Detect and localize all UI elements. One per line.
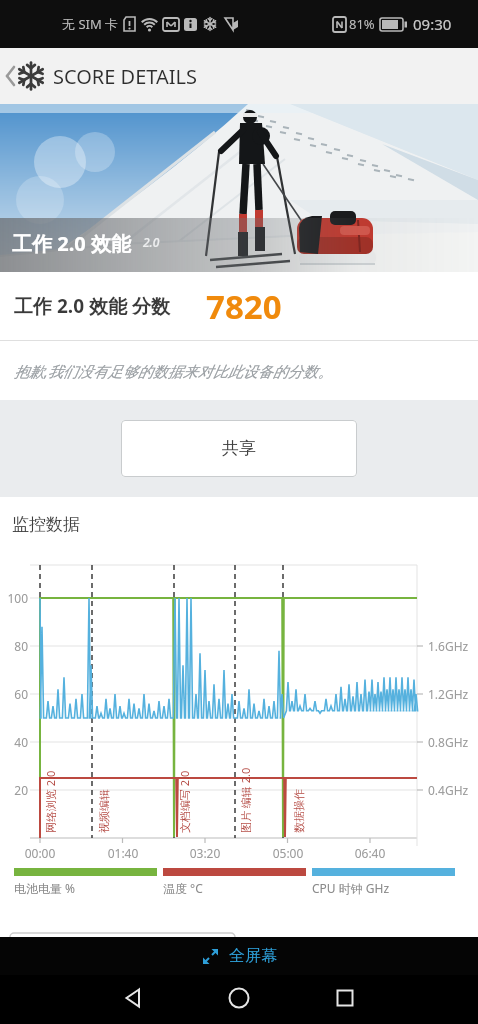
staticText: 80 — [2, 638, 28, 654]
staticText: 20 — [2, 782, 28, 798]
staticText: 共享 — [222, 438, 256, 459]
button[interactable] — [186, 975, 292, 1024]
staticText: 7820 — [206, 284, 282, 329]
staticText: 温度 °C — [163, 880, 203, 896]
staticText: 2.0 — [143, 234, 160, 250]
staticText: 工作 2.0 效能 — [12, 230, 131, 257]
staticText: 05:00 — [266, 845, 310, 861]
staticText: 09:30 — [413, 14, 452, 34]
staticText: 0.4GHz — [428, 782, 469, 798]
button[interactable]: SCORE DETAILS — [0, 48, 478, 104]
staticText: 00:00 — [18, 845, 62, 861]
staticText: 全屏幕 — [229, 946, 277, 966]
staticText: SCORE DETAILS — [53, 63, 198, 90]
staticText: 01:40 — [101, 845, 145, 861]
staticText: 1.6GHz — [428, 638, 469, 654]
staticText: 100 — [2, 590, 28, 606]
button[interactable]: 共享 — [121, 420, 357, 477]
staticText: 电池电量 % — [14, 880, 76, 896]
button[interactable] — [292, 975, 398, 1024]
button[interactable] — [80, 975, 186, 1024]
staticText: 工作 2.0 效能 分数 — [14, 293, 170, 319]
staticText: 40 — [2, 734, 28, 750]
staticText: 抱歉,我们没有足够的数据来对比此设备的分数。 — [14, 361, 333, 381]
staticText: 无 SIM 卡 — [62, 15, 119, 33]
button[interactable]: 全屏幕 — [0, 937, 478, 975]
staticText: 06:40 — [348, 845, 392, 861]
staticText: 03:20 — [183, 845, 227, 861]
staticText: CPU 时钟 GHz — [312, 880, 390, 896]
staticText: 监控数据 — [12, 514, 80, 535]
staticText: 1.2GHz — [428, 686, 469, 702]
staticText: 81% — [349, 15, 375, 33]
staticText: 60 — [2, 686, 28, 702]
staticText: 0.8GHz — [428, 734, 469, 750]
